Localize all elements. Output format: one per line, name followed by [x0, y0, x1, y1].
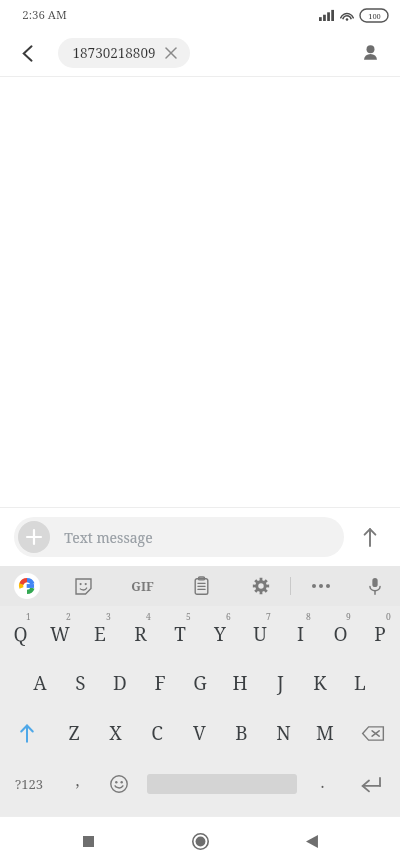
staticText: 3	[106, 611, 111, 623]
button[interactable]: Home	[176, 817, 224, 865]
button[interactable]: T	[160, 606, 200, 658]
button[interactable]: Google	[0, 566, 54, 606]
staticText: 5	[186, 611, 191, 623]
staticText: P	[374, 621, 386, 647]
button[interactable]: 18730218809	[58, 38, 190, 68]
staticText: 4	[146, 611, 151, 623]
staticText: K	[313, 670, 327, 696]
staticText: A	[33, 670, 47, 696]
button[interactable]: N	[262, 708, 304, 758]
staticText: ?123	[15, 775, 43, 793]
staticText: 6	[226, 611, 231, 623]
staticText: N	[276, 720, 291, 746]
button[interactable]: F	[140, 658, 180, 708]
button[interactable]: Settings	[231, 566, 290, 606]
button[interactable]: C	[136, 708, 178, 758]
staticText: F	[154, 670, 166, 696]
staticText: U	[253, 621, 267, 647]
button[interactable]: L	[340, 658, 380, 708]
staticText: M	[316, 720, 334, 746]
staticText: 2	[66, 611, 71, 623]
staticText: Y	[214, 621, 226, 647]
staticText: D	[113, 670, 127, 696]
button[interactable]: GIF	[113, 566, 172, 606]
staticText: H	[232, 670, 248, 696]
button[interactable]: Y	[200, 606, 240, 658]
staticText: .	[320, 771, 325, 793]
button[interactable]: Backspace	[346, 708, 400, 758]
staticText: 9	[346, 611, 351, 623]
button[interactable]: O	[320, 606, 360, 658]
button[interactable]: Text message	[14, 517, 344, 557]
button[interactable]: J	[260, 658, 300, 708]
staticText: 18730218809	[72, 44, 156, 62]
staticText: 100	[368, 11, 381, 21]
button[interactable]: W	[40, 606, 80, 658]
button[interactable]: More options	[291, 566, 350, 606]
staticText: S	[75, 670, 86, 696]
staticText: C	[151, 720, 163, 746]
button[interactable]: I	[280, 606, 320, 658]
button[interactable]: M	[304, 708, 346, 758]
staticText: G	[193, 670, 207, 696]
staticText: Q	[13, 621, 28, 647]
button[interactable]: U	[240, 606, 280, 658]
button[interactable]: .	[303, 758, 342, 810]
button[interactable]: S	[60, 658, 100, 708]
staticText: 8	[306, 611, 311, 623]
staticText: B	[235, 720, 248, 746]
staticText: GIF	[131, 578, 154, 595]
button[interactable]: Contact details	[352, 35, 388, 71]
button[interactable]: G	[180, 658, 220, 708]
button[interactable]: Back	[288, 817, 336, 865]
staticText: 1	[26, 611, 31, 623]
staticText: Text message	[64, 528, 153, 547]
staticText: 0	[386, 611, 391, 623]
button[interactable]: ,	[58, 758, 97, 810]
button[interactable]: Space	[140, 758, 303, 810]
staticText: 2:36 AM	[22, 7, 67, 23]
button[interactable]: Z	[53, 708, 94, 758]
staticText: X	[109, 720, 122, 746]
button[interactable]: Recents	[64, 817, 112, 865]
button[interactable]: X	[94, 708, 136, 758]
staticText: T	[174, 621, 186, 647]
button[interactable]: V	[178, 708, 220, 758]
button[interactable]: Shift	[0, 708, 53, 758]
button[interactable]: B	[220, 708, 262, 758]
button[interactable]: Clipboard	[172, 566, 231, 606]
button[interactable]: Enter	[342, 758, 400, 810]
staticText: R	[134, 621, 147, 647]
button[interactable]: H	[220, 658, 260, 708]
staticText: V	[193, 720, 206, 746]
button[interactable]: Stickers	[54, 566, 113, 606]
staticText: Z	[68, 720, 80, 746]
button[interactable]: Back	[10, 35, 46, 71]
button[interactable]: Emoji	[97, 758, 140, 810]
button[interactable]: Send	[350, 517, 390, 557]
staticText: L	[354, 670, 366, 696]
button[interactable]: P	[360, 606, 400, 658]
staticText: I	[297, 621, 304, 647]
button[interactable]: Q	[0, 606, 40, 658]
button[interactable]: A	[20, 658, 60, 708]
staticText: E	[94, 621, 106, 647]
staticText: J	[277, 670, 284, 696]
staticText: 7	[266, 611, 271, 623]
staticText: ,	[75, 769, 80, 791]
button[interactable]: Voice input	[350, 566, 400, 606]
button[interactable]: R	[120, 606, 160, 658]
staticText: O	[333, 621, 348, 647]
button[interactable]: ?123	[0, 758, 58, 810]
button[interactable]: E	[80, 606, 120, 658]
button[interactable]: K	[300, 658, 340, 708]
staticText: W	[50, 621, 70, 647]
button[interactable]: D	[100, 658, 140, 708]
